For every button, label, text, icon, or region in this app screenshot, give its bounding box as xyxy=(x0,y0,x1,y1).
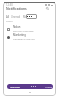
staticText: Notifications xyxy=(6,6,27,10)
button[interactable]: Muted xyxy=(23,15,31,19)
staticText: UNDO xyxy=(45,85,53,88)
button[interactable]: Unread xyxy=(11,15,21,19)
staticText: Unread xyxy=(11,15,21,19)
staticText: 12:30 xyxy=(6,3,13,7)
button[interactable]: Nolan xyxy=(5,25,53,33)
staticText: Nolan xyxy=(13,25,21,29)
staticText: Sent you a message xyxy=(13,30,34,33)
button[interactable]: Search xyxy=(45,6,50,11)
button[interactable]: Marketing xyxy=(5,33,53,41)
staticText: All xyxy=(6,15,9,19)
staticText: Archived xyxy=(10,85,20,88)
staticText: Marketing xyxy=(13,33,26,37)
button[interactable]: All xyxy=(6,15,9,19)
staticText: TODAY xyxy=(6,20,13,23)
staticText: Muted xyxy=(23,15,31,19)
button[interactable]: Archived xyxy=(7,84,53,89)
staticText: Campaign is now live xyxy=(13,38,35,41)
button[interactable]: More options xyxy=(26,14,37,19)
